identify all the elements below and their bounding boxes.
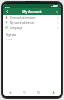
button[interactable]: Back bbox=[5, 9, 10, 14]
staticText: Language bbox=[10, 26, 23, 30]
button[interactable]: Language bbox=[3, 25, 61, 30]
button[interactable]: Personal information bbox=[3, 15, 61, 20]
button[interactable]: Home bbox=[3, 88, 17, 96]
staticText: Sign out bbox=[6, 33, 17, 37]
staticText: v 1.0.2 bbox=[6, 38, 13, 41]
staticText: Personal information bbox=[10, 16, 36, 20]
button[interactable]: Orders bbox=[31, 88, 46, 96]
staticText: My saved addresses bbox=[10, 21, 35, 25]
button[interactable]: More options bbox=[54, 9, 59, 14]
staticText: My Account bbox=[22, 9, 42, 14]
button[interactable]: Search bbox=[17, 88, 31, 96]
button[interactable]: Account bbox=[46, 88, 61, 96]
staticText: 9:41 bbox=[5, 5, 10, 8]
button[interactable]: My saved addresses bbox=[3, 20, 61, 25]
